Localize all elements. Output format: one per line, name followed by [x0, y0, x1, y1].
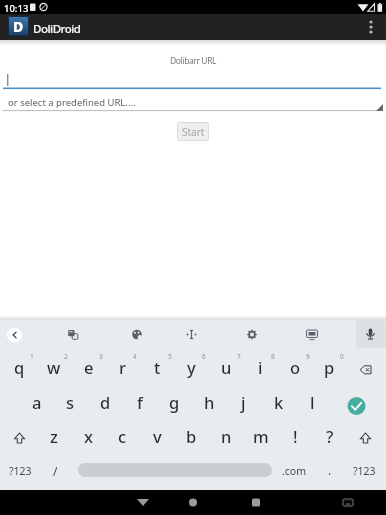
staticText: x — [84, 425, 93, 447]
button[interactable] — [334, 490, 362, 515]
staticText: y — [187, 356, 196, 378]
button[interactable] — [343, 392, 371, 420]
staticText: u — [221, 356, 232, 378]
button[interactable]: x — [72, 419, 105, 452]
button[interactable] — [242, 490, 272, 515]
staticText: Dolibarr URL — [170, 55, 217, 67]
staticText: n — [221, 425, 232, 447]
button[interactable]: d — [89, 385, 122, 419]
staticText: m — [253, 425, 269, 447]
button[interactable] — [178, 490, 208, 515]
button[interactable]: o — [279, 350, 312, 384]
button[interactable]: c — [106, 419, 139, 452]
staticText: 4 — [133, 352, 137, 361]
button[interactable] — [3, 323, 26, 346]
button[interactable] — [349, 350, 386, 385]
staticText: ? — [326, 425, 334, 447]
staticText: i — [258, 356, 263, 378]
staticText: . — [328, 462, 332, 478]
staticText: q — [14, 356, 25, 378]
button[interactable] — [360, 14, 384, 40]
staticText: b — [186, 425, 197, 447]
staticText: D — [13, 17, 24, 36]
staticText: e — [84, 356, 94, 378]
button[interactable]: Start — [177, 122, 209, 141]
button[interactable] — [0, 92, 386, 111]
button[interactable] — [78, 463, 272, 477]
staticText: 8 — [271, 352, 275, 361]
staticText: f — [137, 391, 143, 413]
staticText: 5 — [168, 352, 172, 361]
button[interactable]: v — [141, 419, 174, 452]
staticText: ?123 — [9, 464, 32, 478]
staticText: Start — [182, 125, 205, 139]
staticText: c — [118, 425, 127, 447]
button[interactable]: k — [262, 385, 295, 419]
staticText: ! — [293, 425, 298, 447]
button[interactable]: . — [315, 453, 345, 486]
button[interactable] — [179, 323, 203, 347]
staticText: h — [204, 391, 215, 413]
button[interactable]: ? — [313, 419, 346, 452]
staticText: a — [32, 391, 42, 413]
button[interactable] — [300, 323, 324, 347]
staticText: j — [241, 391, 246, 413]
staticText: .com — [282, 464, 307, 478]
button[interactable]: q — [3, 350, 36, 384]
staticText: v — [153, 425, 162, 447]
staticText: t — [154, 356, 161, 378]
button[interactable]: h — [193, 385, 226, 419]
staticText: 10:13 — [4, 2, 29, 15]
button[interactable]: y — [175, 350, 208, 384]
button[interactable] — [125, 323, 149, 347]
staticText: d — [100, 391, 111, 413]
button[interactable]: e — [72, 350, 105, 384]
button[interactable] — [348, 420, 382, 454]
button[interactable]: l — [296, 385, 329, 419]
staticText: 6 — [202, 352, 206, 361]
button[interactable] — [2, 420, 36, 454]
button[interactable]: i — [244, 350, 277, 384]
staticText: p — [324, 356, 335, 378]
button[interactable]: ! — [279, 419, 312, 452]
staticText: o — [290, 356, 301, 378]
button[interactable]: u — [210, 350, 243, 384]
button[interactable] — [356, 320, 386, 348]
button[interactable]: ?123 — [1, 454, 39, 487]
staticText: 7 — [237, 352, 241, 361]
staticText: or select a predefined URL.... — [8, 96, 136, 109]
button[interactable] — [61, 323, 85, 347]
button[interactable]: s — [54, 385, 87, 419]
staticText: z — [50, 425, 58, 447]
button[interactable]: b — [175, 419, 208, 452]
button[interactable]: / — [39, 454, 71, 487]
button[interactable]: f — [123, 385, 156, 419]
staticText: ?123 — [353, 464, 376, 478]
button[interactable]: g — [158, 385, 191, 419]
staticText: / — [53, 463, 58, 479]
button[interactable]: m — [244, 419, 277, 452]
staticText: 2 — [64, 352, 68, 361]
button[interactable]: ?123 — [345, 454, 383, 487]
button[interactable]: r — [106, 350, 139, 384]
button[interactable]: w — [37, 350, 70, 384]
button[interactable]: t — [141, 350, 174, 384]
button[interactable] — [3, 68, 381, 89]
button[interactable]: n — [210, 419, 243, 452]
staticText: w — [47, 356, 61, 378]
staticText: k — [274, 391, 284, 413]
staticText: 1 — [30, 352, 34, 361]
button[interactable] — [240, 323, 264, 347]
button[interactable]: a — [20, 385, 53, 419]
staticText: r — [119, 356, 126, 378]
staticText: 0 — [340, 352, 344, 361]
staticText: 9 — [306, 352, 310, 361]
staticText: l — [310, 391, 315, 413]
button[interactable]: z — [37, 419, 70, 452]
staticText: g — [169, 391, 180, 413]
staticText: s — [66, 391, 75, 413]
button[interactable]: p — [313, 350, 346, 384]
button[interactable]: j — [227, 385, 260, 419]
button[interactable]: .com — [275, 454, 313, 487]
button[interactable] — [128, 490, 158, 515]
